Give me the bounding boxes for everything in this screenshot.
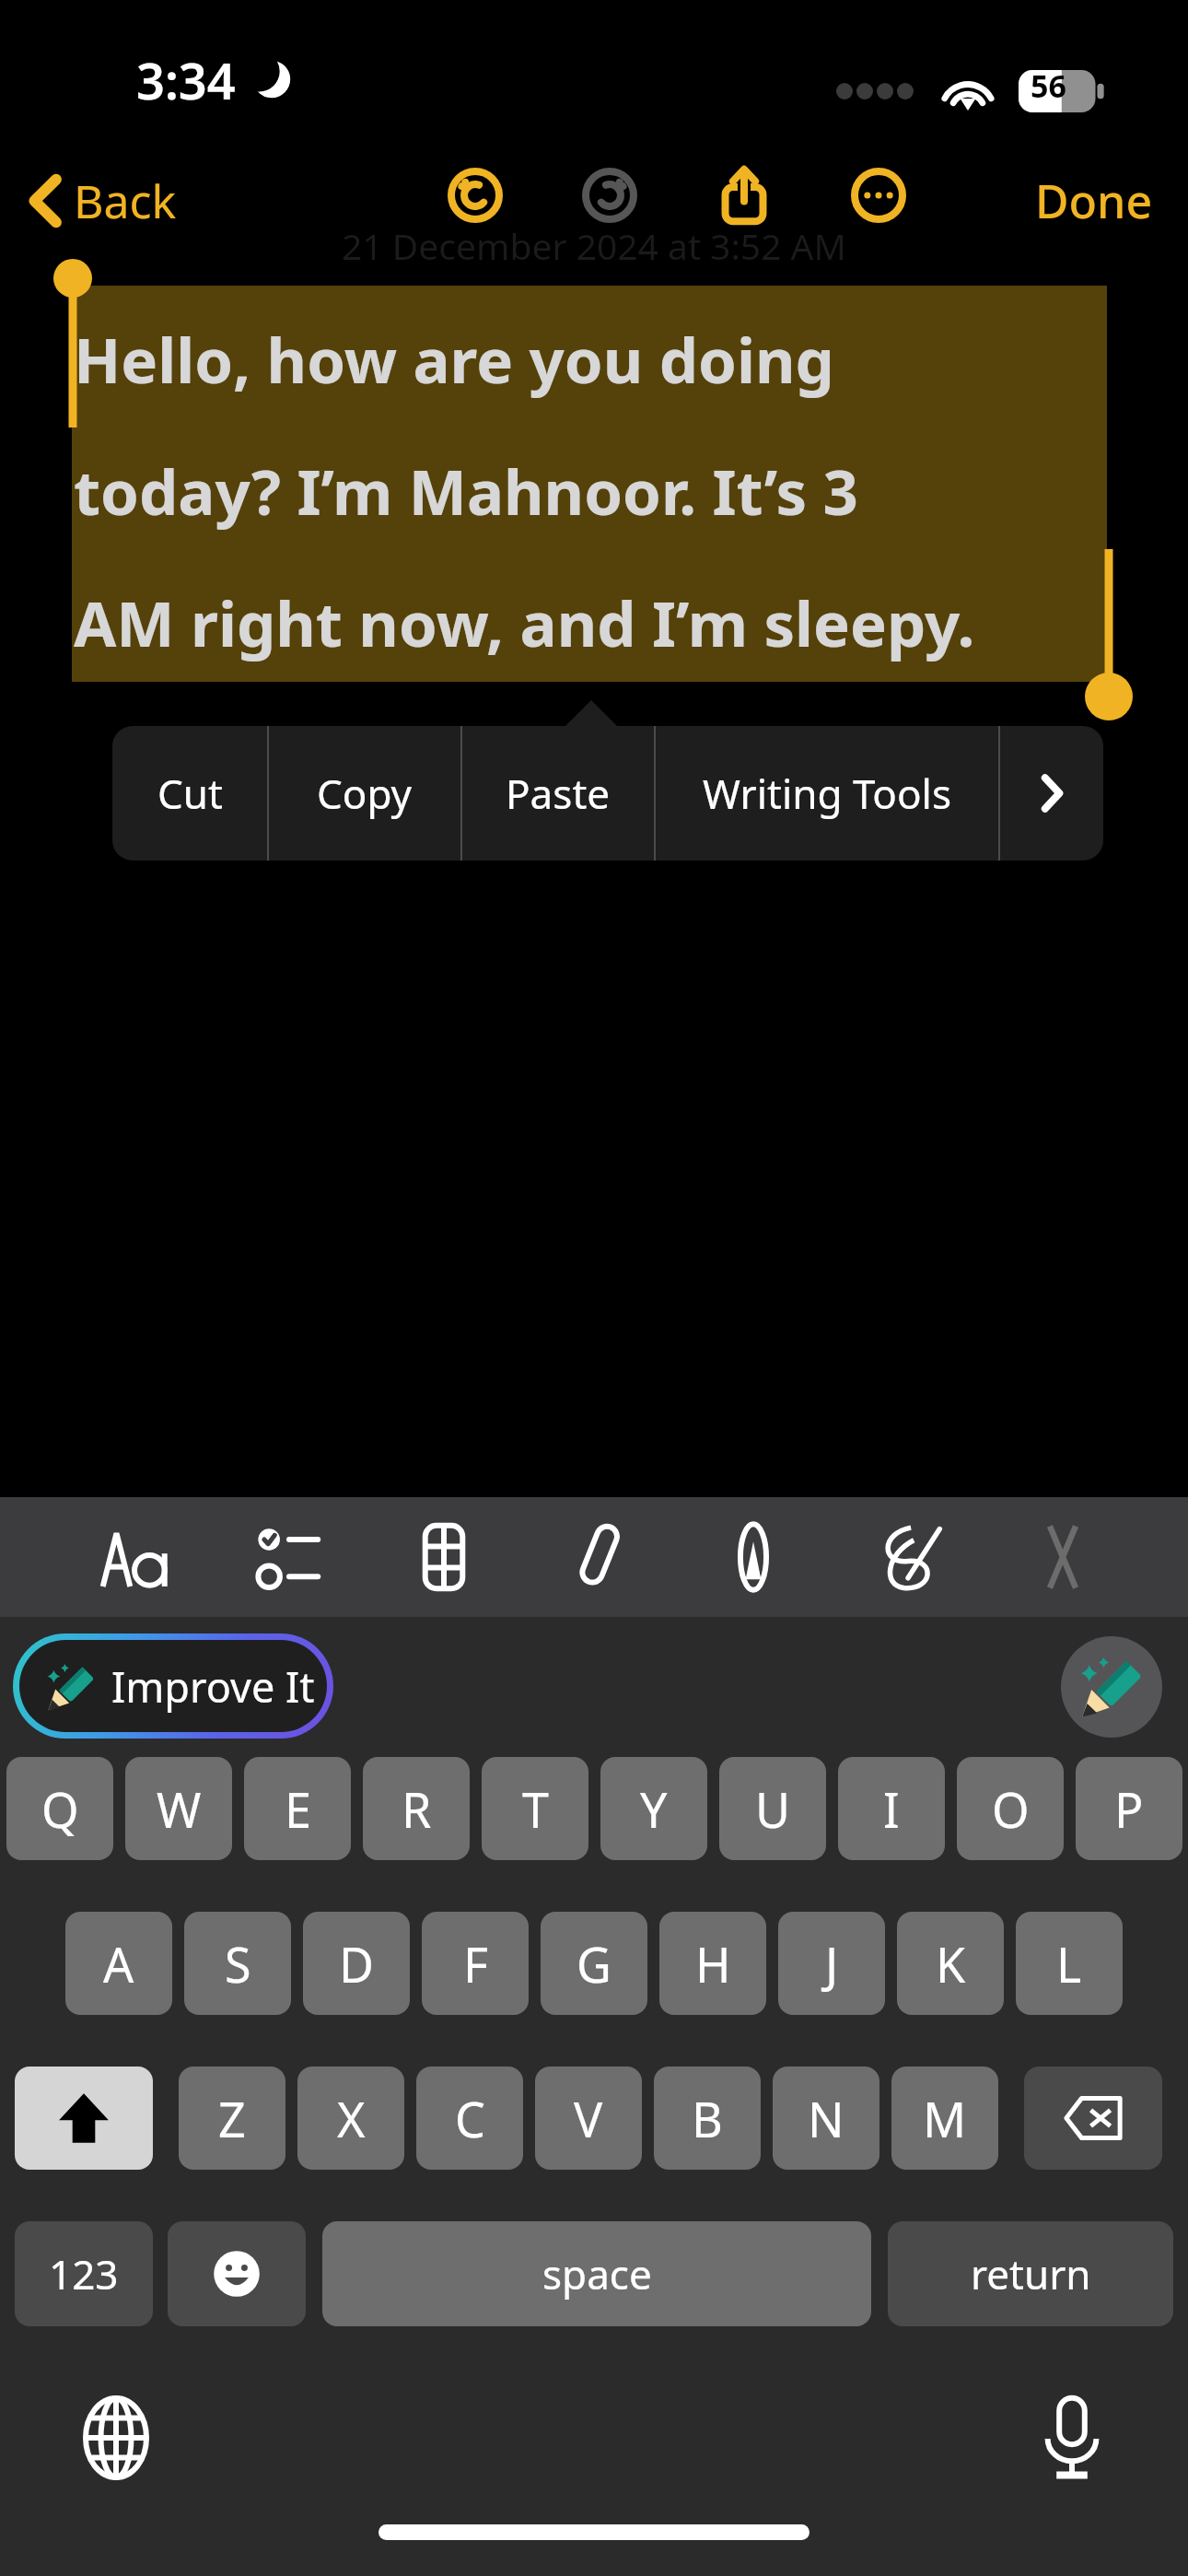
staticText: G	[577, 1931, 611, 1996]
button[interactable]: Copy	[269, 726, 460, 861]
staticText: space	[542, 2246, 652, 2301]
button[interactable]: Backspace	[1024, 2067, 1162, 2170]
button[interactable]: Undo	[440, 160, 510, 230]
button[interactable]: Redo	[575, 160, 645, 230]
staticText: Y	[640, 1776, 668, 1842]
staticText: P	[1114, 1776, 1144, 1842]
button[interactable]: Markup	[707, 1504, 799, 1610]
button[interactable]: Y	[600, 1757, 707, 1860]
other: Selection end handle	[1090, 549, 1127, 720]
button[interactable]: J	[778, 1912, 885, 2015]
button[interactable]: R	[363, 1757, 470, 1860]
button[interactable]: Paste	[462, 726, 654, 861]
button[interactable]: Hide keyboard	[1017, 1504, 1109, 1610]
button[interactable]: Cut	[112, 726, 267, 861]
button[interactable]: Change keyboard	[70, 2392, 162, 2484]
staticText: W	[157, 1776, 202, 1842]
staticText: V	[574, 2086, 603, 2151]
button[interactable]: A	[65, 1912, 172, 2015]
button[interactable]: U	[719, 1757, 826, 1860]
button[interactable]: F	[422, 1912, 529, 2015]
button[interactable]: H	[659, 1912, 766, 2015]
button[interactable]: Q	[6, 1757, 113, 1860]
staticText: Copy	[317, 766, 413, 821]
button[interactable]	[72, 286, 1107, 682]
button[interactable]: D	[303, 1912, 410, 2015]
staticText: return	[971, 2246, 1091, 2301]
button[interactable]: L	[1016, 1912, 1123, 2015]
button[interactable]: Scribble	[862, 1504, 954, 1610]
button[interactable]: return	[888, 2221, 1173, 2326]
button[interactable]: Dictate	[1026, 2392, 1118, 2484]
button[interactable]: Checklist	[243, 1504, 335, 1610]
staticText: R	[402, 1776, 432, 1842]
button[interactable]: G	[541, 1912, 647, 2015]
staticText: E	[285, 1776, 311, 1842]
staticText: Writing Tools	[703, 766, 951, 821]
staticText: 21 December 2024 at 3:52 AM	[342, 221, 846, 270]
button[interactable]: K	[897, 1912, 1004, 2015]
other: Selection start handle	[57, 260, 88, 427]
button[interactable]: Z	[179, 2067, 285, 2170]
button[interactable]: Share	[709, 160, 779, 230]
button[interactable]: V	[535, 2067, 642, 2170]
staticText: Done	[1035, 170, 1153, 232]
button[interactable]: More actions	[1000, 726, 1103, 861]
staticText: B	[692, 2086, 723, 2151]
button[interactable]: Emoji	[168, 2221, 306, 2326]
button[interactable]: E	[244, 1757, 351, 1860]
button[interactable]: Attach file	[553, 1504, 645, 1610]
staticText: 56	[1031, 64, 1066, 107]
button[interactable]: Shift	[15, 2067, 153, 2170]
staticText: F	[463, 1931, 488, 1996]
staticText: C	[455, 2086, 485, 2151]
staticText: M	[923, 2086, 967, 2151]
button[interactable]: P	[1076, 1757, 1182, 1860]
staticText: S	[225, 1931, 251, 1996]
button[interactable]: B	[654, 2067, 761, 2170]
staticText: Back	[74, 170, 177, 232]
button[interactable]: T	[482, 1757, 588, 1860]
staticText: K	[936, 1931, 966, 1996]
staticText: T	[522, 1776, 549, 1842]
staticText: A	[103, 1931, 134, 1996]
staticText: Cut	[157, 766, 223, 821]
button[interactable]: O	[957, 1757, 1064, 1860]
button[interactable]: space	[322, 2221, 871, 2326]
staticText: Improve It	[111, 1658, 315, 1715]
button[interactable]: X	[297, 2067, 404, 2170]
button[interactable]: W	[125, 1757, 232, 1860]
button[interactable]: C	[416, 2067, 523, 2170]
button[interactable]: Back	[22, 164, 184, 238]
staticText: N	[808, 2086, 844, 2151]
staticText: AM right now, and I’m sleepy.	[74, 580, 975, 664]
button[interactable]: Text format	[88, 1504, 181, 1610]
staticText: Paste	[506, 766, 611, 821]
staticText: Q	[41, 1776, 79, 1842]
staticText: O	[992, 1776, 1030, 1842]
staticText: 3:34	[136, 46, 236, 114]
staticText: Z	[218, 2086, 246, 2151]
staticText: J	[825, 1931, 839, 1996]
staticText: D	[339, 1931, 374, 1996]
staticText: L	[1056, 1931, 1082, 1996]
button[interactable]: Writing Tools	[656, 726, 998, 861]
staticText: X	[337, 2086, 366, 2151]
staticText: Hello, how are you doing	[74, 317, 834, 401]
staticText: I	[883, 1776, 900, 1842]
staticText: 123	[49, 2246, 119, 2301]
button[interactable]: Table	[398, 1504, 490, 1610]
staticText: U	[755, 1776, 791, 1842]
button[interactable]: M	[891, 2067, 998, 2170]
button[interactable]: Improve It	[13, 1633, 333, 1739]
button[interactable]: Done	[1026, 164, 1162, 238]
button[interactable]: More	[844, 160, 914, 230]
button[interactable]: S	[184, 1912, 291, 2015]
staticText: today? I’m Mahnoor. It’s 3	[74, 449, 858, 533]
button[interactable]: I	[838, 1757, 945, 1860]
button[interactable]: 123	[15, 2221, 153, 2326]
staticText: H	[695, 1931, 731, 1996]
button[interactable]: Writing Tools	[1061, 1636, 1162, 1738]
button[interactable]: N	[773, 2067, 879, 2170]
